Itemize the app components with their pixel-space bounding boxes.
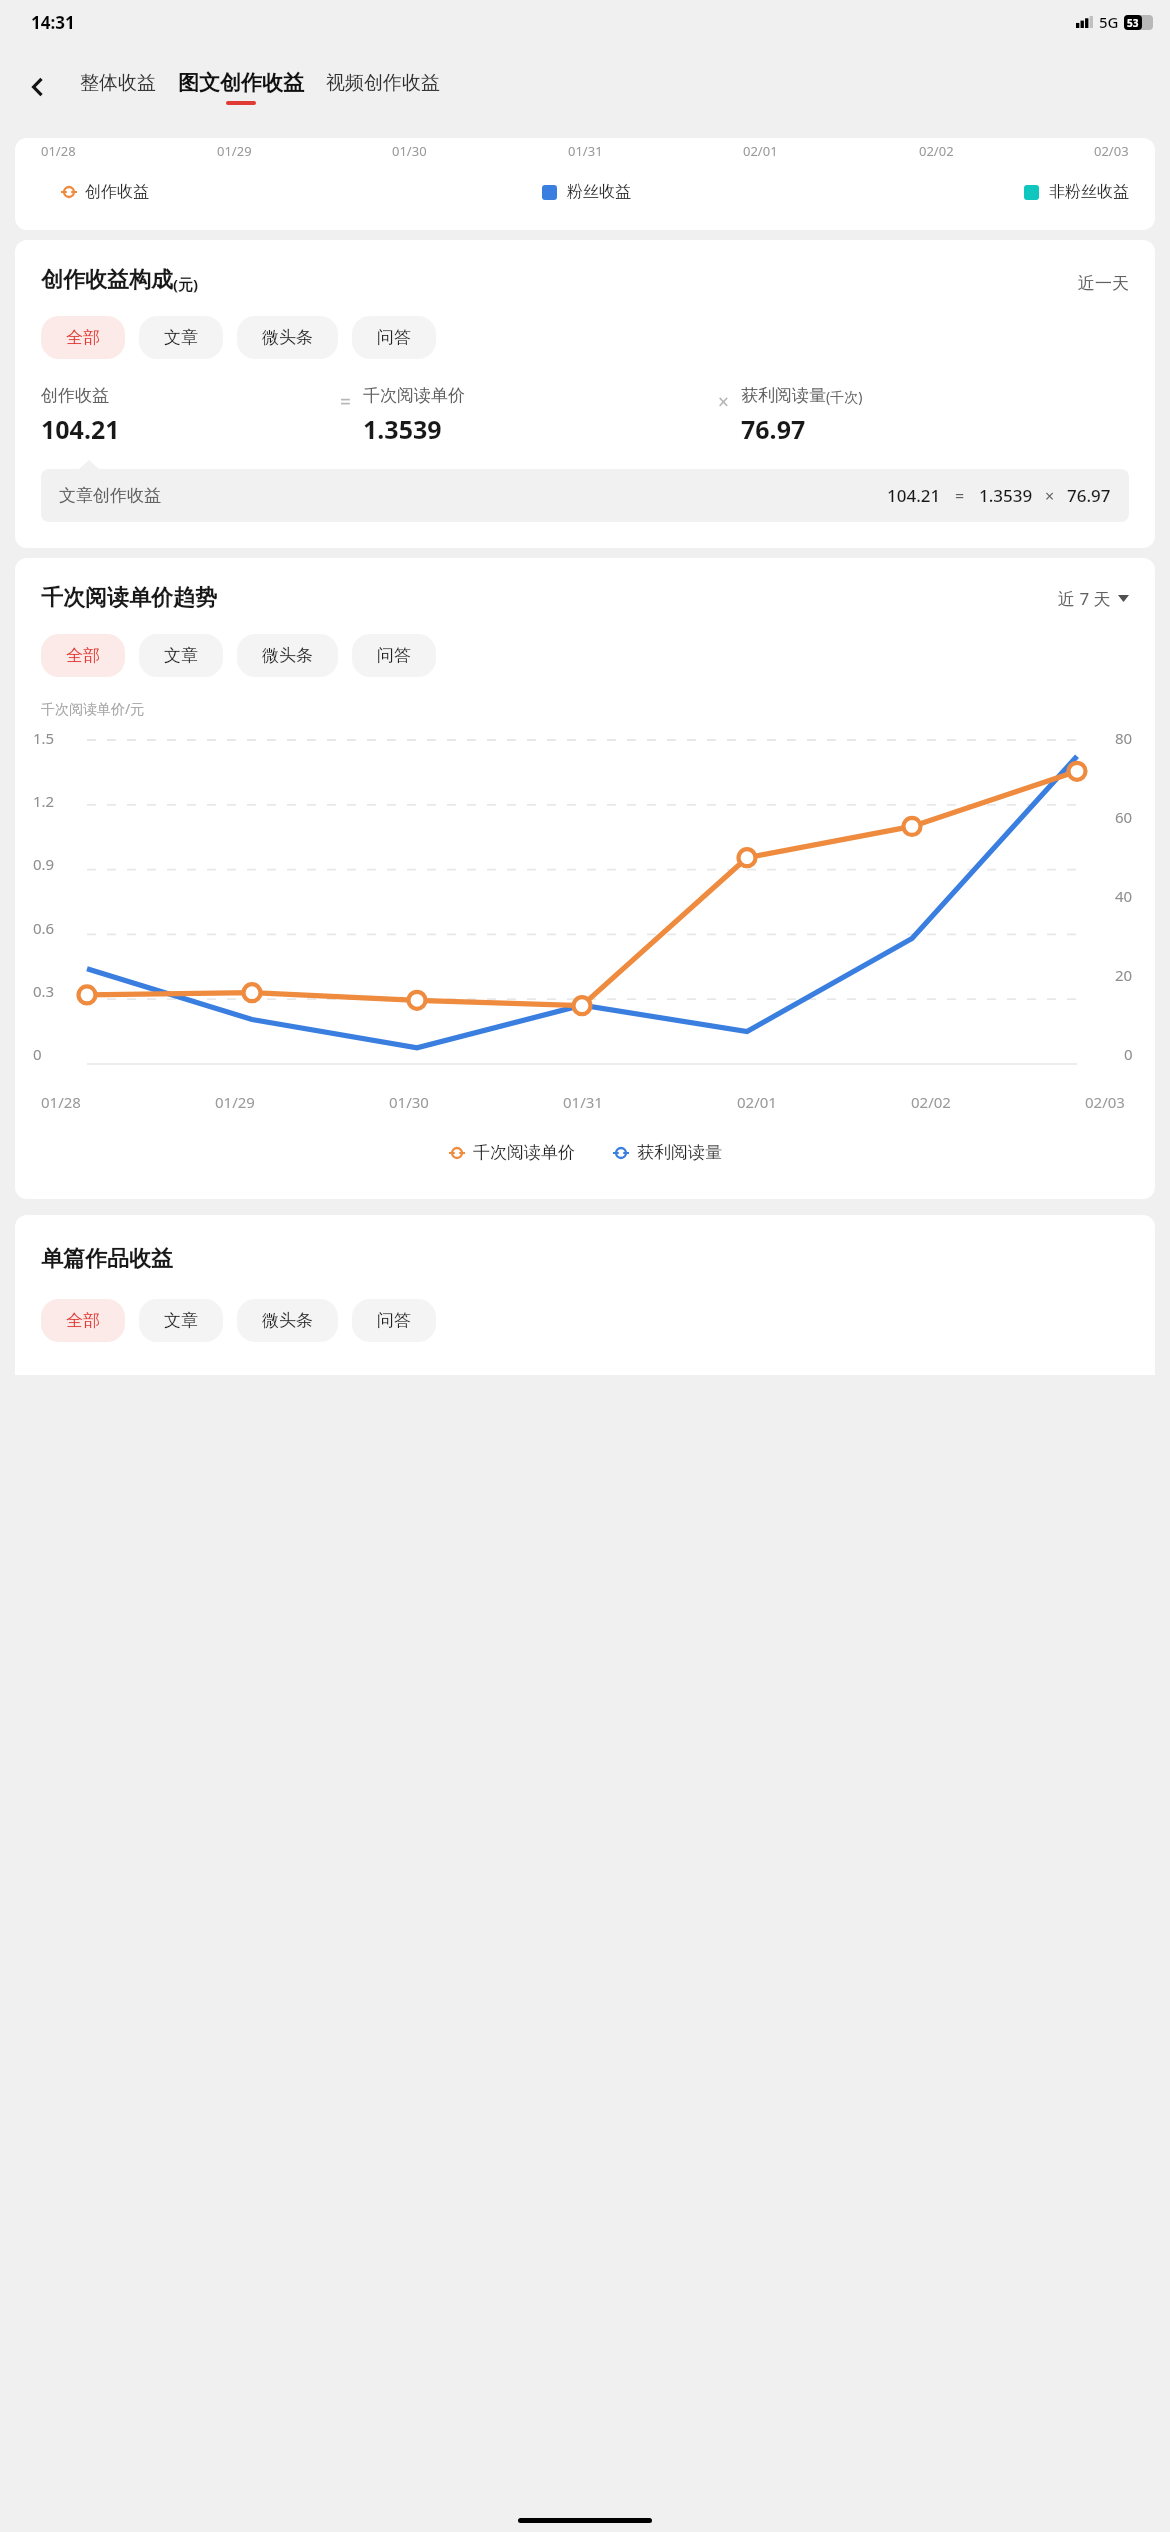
staticText: 76.97	[741, 412, 806, 446]
staticText: 问答	[377, 1310, 411, 1331]
staticText: 40	[1115, 886, 1133, 906]
staticText: 02/03	[1085, 1092, 1125, 1112]
staticText: 千次阅读单价	[363, 385, 465, 406]
staticText: 104.21	[41, 412, 120, 446]
button[interactable]: 微头条	[237, 1299, 338, 1342]
staticText: 1.2	[33, 791, 55, 811]
staticText: =	[340, 389, 351, 415]
staticText: 02/02	[919, 142, 954, 160]
button[interactable]: 全部	[41, 1299, 125, 1342]
staticText: 文章	[164, 327, 198, 348]
staticText: 问答	[377, 645, 411, 666]
button[interactable]: 问答	[352, 634, 436, 677]
staticText: 创作收益构成	[41, 266, 173, 294]
staticText: 02/01	[743, 142, 778, 160]
staticText: 全部	[66, 645, 100, 666]
button[interactable]: 微头条	[237, 316, 338, 359]
staticText: 02/01	[737, 1092, 777, 1112]
staticText: 文章	[164, 645, 198, 666]
staticText: 60	[1115, 807, 1133, 827]
button[interactable]: 问答	[352, 316, 436, 359]
staticText: 1.3539	[363, 412, 442, 446]
button[interactable]: 文章	[139, 1299, 223, 1342]
staticText: 微头条	[262, 1310, 313, 1331]
staticText: 全部	[66, 1310, 100, 1331]
staticText: 文章创作收益	[59, 485, 161, 506]
button[interactable]: 微头条	[237, 634, 338, 677]
staticText: ×	[718, 389, 729, 415]
staticText: 文章	[164, 1310, 198, 1331]
staticText: 01/31	[563, 1092, 603, 1112]
staticText: 获利阅读量	[741, 385, 826, 406]
staticText: 104.21	[887, 484, 941, 507]
button[interactable]: 近 7 天	[1058, 587, 1129, 610]
button[interactable]: 图文创作收益	[176, 66, 306, 109]
button[interactable]: 整体收益	[78, 67, 158, 108]
staticText: 01/29	[217, 142, 252, 160]
button[interactable]: Back	[14, 63, 62, 111]
staticText: 14:31	[31, 11, 75, 34]
staticText: 获利阅读量	[637, 1142, 722, 1163]
staticText: 近 7 天	[1058, 587, 1111, 610]
staticText: 5G	[1099, 12, 1119, 32]
staticText: 整体收益	[80, 71, 156, 95]
staticText: 20	[1115, 965, 1133, 985]
staticText: 01/28	[41, 1092, 81, 1112]
button[interactable]: 文章	[139, 634, 223, 677]
staticText: 千次阅读单价	[473, 1142, 575, 1163]
staticText: 创作收益	[85, 182, 149, 202]
staticText: 0	[33, 1044, 42, 1064]
staticText: =	[955, 485, 965, 507]
button[interactable]: 全部	[41, 316, 125, 359]
staticText: 千次阅读单价趋势	[41, 584, 217, 612]
button[interactable]: 问答	[352, 1299, 436, 1342]
staticText: 近一天	[1078, 273, 1129, 294]
staticText: 千次阅读单价/元	[41, 699, 145, 718]
staticText: 0.9	[33, 854, 55, 874]
staticText: 视频创作收益	[326, 71, 440, 95]
staticText: 图文创作收益	[178, 70, 304, 96]
staticText: 微头条	[262, 645, 313, 666]
staticText: 01/28	[41, 142, 76, 160]
staticText: 02/03	[1094, 142, 1129, 160]
button[interactable]: 视频创作收益	[324, 67, 442, 108]
staticText: 1.5	[33, 728, 55, 748]
staticText: 01/29	[215, 1092, 255, 1112]
staticText: 非粉丝收益	[1049, 182, 1129, 202]
staticText: 01/30	[389, 1092, 429, 1112]
staticText: 1.3539	[979, 484, 1033, 507]
button[interactable]: 近一天	[1078, 273, 1129, 294]
staticText: 0	[1124, 1044, 1133, 1064]
staticText: ×	[1045, 485, 1055, 507]
staticText: 创作收益	[41, 385, 109, 406]
staticText: (元)	[173, 274, 199, 294]
staticText: 80	[1115, 728, 1133, 748]
staticText: 粉丝收益	[567, 182, 631, 202]
staticText: 53	[1127, 16, 1139, 30]
staticText: 微头条	[262, 327, 313, 348]
staticText: 问答	[377, 327, 411, 348]
staticText: 全部	[66, 327, 100, 348]
staticText: 01/31	[568, 142, 603, 160]
staticText: (千次)	[826, 387, 863, 406]
staticText: 单篇作品收益	[41, 1245, 173, 1273]
staticText: 01/30	[392, 142, 427, 160]
button[interactable]: 文章	[139, 316, 223, 359]
staticText: 76.97	[1067, 484, 1111, 507]
staticText: 0.3	[33, 981, 55, 1001]
staticText: 02/02	[911, 1092, 951, 1112]
button[interactable]: 全部	[41, 634, 125, 677]
staticText: 0.6	[33, 918, 55, 938]
